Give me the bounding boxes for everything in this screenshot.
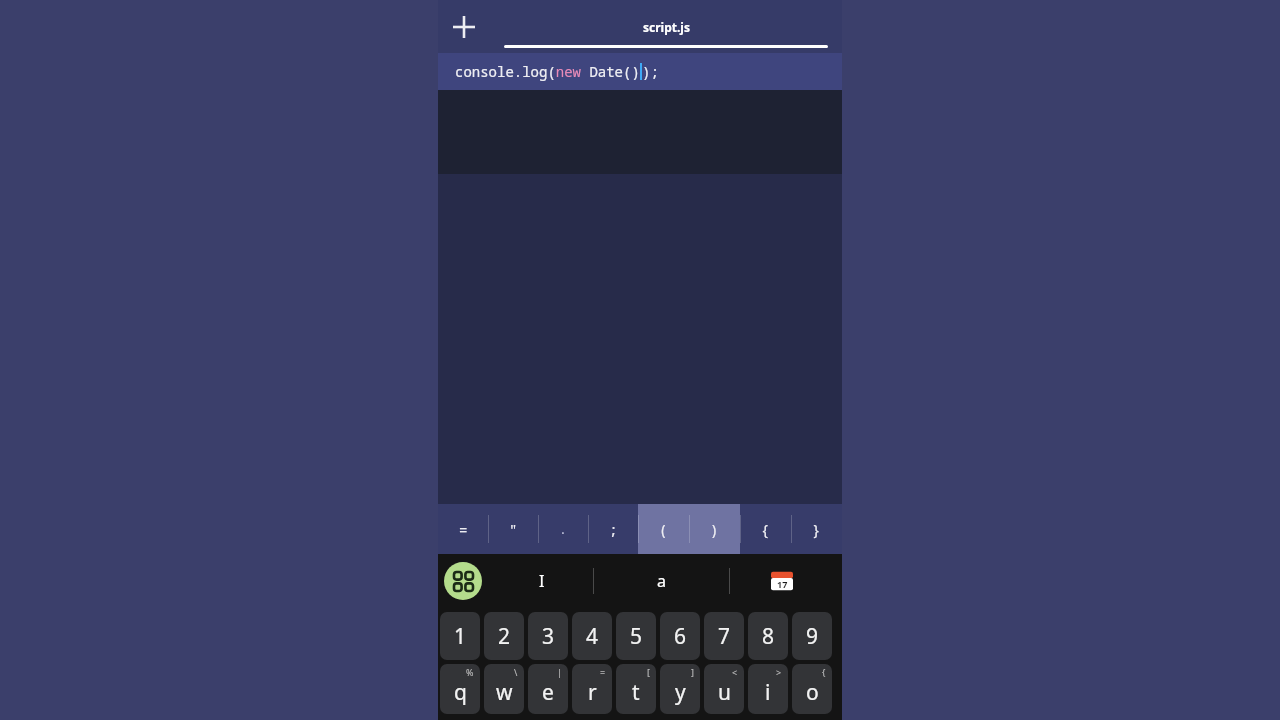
staticText: 3	[542, 622, 555, 651]
staticText: 8	[762, 622, 775, 651]
button[interactable]: Calendar emoji	[730, 569, 834, 593]
staticText: %	[466, 666, 474, 678]
button[interactable]: I	[490, 570, 593, 592]
staticText: 1	[454, 622, 467, 651]
button[interactable]: \	[484, 664, 524, 714]
button[interactable]: <	[704, 664, 744, 714]
staticText: 9	[806, 622, 819, 651]
staticText: i	[765, 678, 771, 707]
staticText: 4	[586, 622, 599, 651]
button[interactable]: a	[594, 570, 729, 592]
staticText: 2	[498, 622, 511, 651]
button[interactable]: >	[748, 664, 788, 714]
button[interactable]: =	[438, 504, 488, 554]
button[interactable]: }	[791, 504, 842, 554]
button[interactable]: {	[740, 504, 791, 554]
staticText: <	[732, 666, 738, 678]
staticText: [	[647, 666, 650, 678]
staticText: 6	[674, 622, 687, 651]
staticText: 7	[718, 622, 731, 651]
staticText: r	[588, 678, 597, 707]
staticText: >	[776, 666, 782, 678]
button[interactable]: {	[792, 664, 832, 714]
button[interactable]: .	[538, 504, 588, 554]
button[interactable]: |	[528, 664, 568, 714]
button[interactable]: "	[488, 504, 538, 554]
button[interactable]: )	[689, 504, 740, 554]
staticText: u	[718, 678, 731, 707]
button[interactable]: %	[440, 664, 480, 714]
staticText: (	[659, 520, 668, 539]
staticText: .	[559, 520, 567, 538]
button[interactable]: 7	[704, 612, 744, 660]
staticText: {	[822, 666, 826, 678]
button[interactable]: [	[616, 664, 656, 714]
button[interactable]: 8	[748, 612, 788, 660]
staticText: q	[454, 678, 467, 707]
staticText: script.js	[643, 19, 690, 35]
button[interactable]: (	[638, 504, 689, 554]
button[interactable]: Apps	[444, 562, 482, 600]
staticText: );	[642, 62, 659, 81]
staticText: y	[675, 678, 686, 707]
button[interactable]: 5	[616, 612, 656, 660]
button[interactable]: script.js	[490, 0, 842, 53]
button[interactable]: New file	[438, 1, 490, 53]
staticText: w	[496, 678, 513, 707]
staticText: o	[806, 678, 819, 707]
staticText: 5	[630, 622, 643, 651]
button[interactable]: 2	[484, 612, 524, 660]
staticText: I	[539, 570, 545, 592]
button[interactable]: 3	[528, 612, 568, 660]
staticText: {	[761, 520, 770, 539]
button[interactable]: console.log(new Date()	[438, 53, 842, 90]
button[interactable]: 4	[572, 612, 612, 660]
staticText: a	[657, 570, 666, 592]
button[interactable]: ]	[660, 664, 700, 714]
staticText: ;	[609, 520, 618, 539]
button[interactable]: 1	[440, 612, 480, 660]
staticText: |	[557, 666, 562, 678]
staticText: e	[542, 678, 554, 707]
staticText: "	[509, 520, 518, 539]
button[interactable]: ;	[588, 504, 638, 554]
button[interactable]: 9	[792, 612, 832, 660]
staticText: )	[710, 520, 719, 539]
staticText: }	[812, 520, 821, 539]
staticText: t	[632, 678, 640, 707]
staticText: console.log(new Date()	[455, 62, 640, 81]
button[interactable]: =	[572, 664, 612, 714]
staticText: 17	[777, 578, 788, 590]
staticText: =	[600, 666, 606, 678]
staticText: =	[459, 520, 468, 539]
button[interactable]: 6	[660, 612, 700, 660]
staticText: \	[514, 666, 518, 678]
staticText: ]	[691, 666, 694, 678]
